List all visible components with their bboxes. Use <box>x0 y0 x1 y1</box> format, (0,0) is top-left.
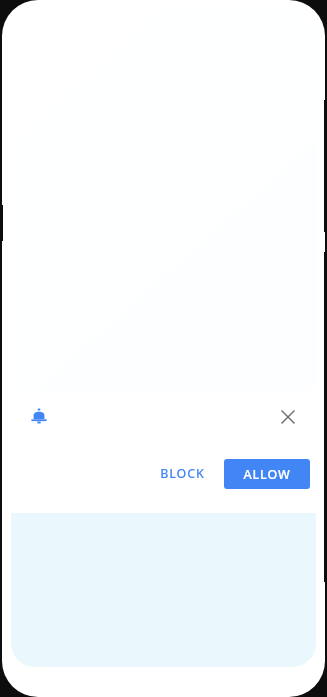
staticText: ALLOW <box>243 466 291 483</box>
staticText: BLOCK <box>160 465 205 482</box>
button[interactable]: BLOCK <box>146 456 219 491</box>
button[interactable]: ALLOW <box>224 459 310 489</box>
button[interactable]: Close <box>268 397 308 437</box>
button[interactable]: Notifications <box>19 397 59 437</box>
